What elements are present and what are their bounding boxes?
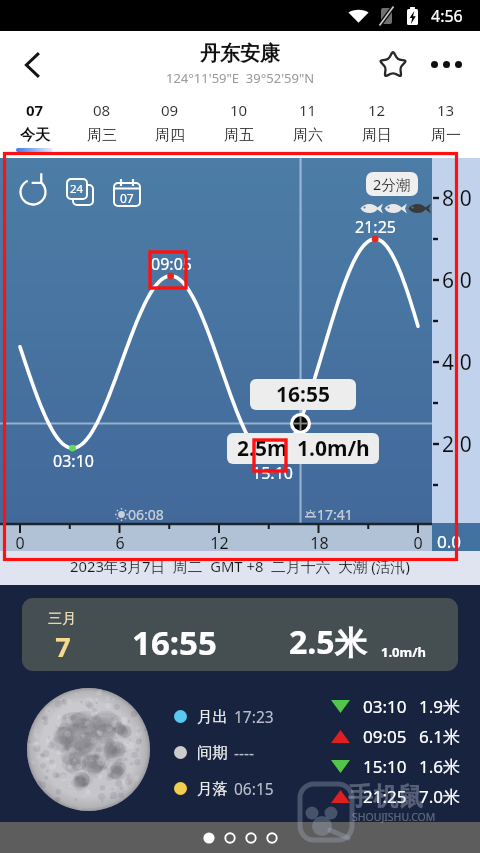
staticText: 6 xyxy=(115,532,125,554)
staticText: 2.0 xyxy=(442,430,472,459)
staticText: 2分潮 xyxy=(373,174,411,194)
button[interactable]: Back xyxy=(4,36,62,94)
button[interactable]: 10 xyxy=(204,95,273,153)
button[interactable]: Favorite xyxy=(371,42,415,86)
staticText: 08 xyxy=(93,100,111,120)
staticText: 6.1米 xyxy=(419,725,461,748)
button[interactable]: 03:10 xyxy=(331,695,461,718)
staticText: 周五 xyxy=(224,126,254,145)
staticText: 16:55 xyxy=(276,380,330,409)
staticText: 17:41 xyxy=(317,505,353,524)
staticText: 07 xyxy=(120,190,134,206)
staticText: 13 xyxy=(437,100,455,120)
staticText: 周六 xyxy=(293,126,323,145)
staticText: 间期 xyxy=(197,743,228,763)
staticText: 09:05 xyxy=(151,253,192,275)
staticText: 03:10 xyxy=(53,450,94,472)
staticText: 4:56 xyxy=(431,5,463,27)
staticText: 月落 xyxy=(197,779,228,799)
button[interactable]: 09:05 xyxy=(331,725,461,748)
staticText: 4.0 xyxy=(442,348,472,377)
staticText: 三月 xyxy=(48,610,76,628)
button[interactable]: 月出 xyxy=(174,706,274,727)
staticText: 周日 xyxy=(362,126,392,145)
staticText: 11 xyxy=(299,100,317,120)
staticText: 07 xyxy=(26,100,44,120)
staticText: 06:15 xyxy=(234,778,274,799)
button[interactable]: Page 3 xyxy=(245,832,257,844)
button[interactable]: 11 xyxy=(273,95,342,153)
button[interactable]: 21:25 xyxy=(331,785,461,808)
staticText: 2.5m xyxy=(237,434,288,463)
staticText: 1.6米 xyxy=(419,755,461,778)
button[interactable]: 2分潮 xyxy=(366,172,418,196)
staticText: 1.9米 xyxy=(419,695,461,718)
staticText: 0 xyxy=(413,532,423,554)
staticText: 手机鼠 xyxy=(348,781,423,812)
button[interactable]: 08 xyxy=(68,95,136,153)
button[interactable]: 2.5m xyxy=(227,433,379,464)
staticText: ---- xyxy=(234,742,254,763)
staticText: 09 xyxy=(161,100,179,120)
staticText: 周三 xyxy=(87,126,117,145)
button[interactable]: 12 xyxy=(342,95,411,153)
staticText: 24 xyxy=(70,181,84,197)
staticText: 8.0 xyxy=(442,184,472,213)
staticText: 1.0m/h xyxy=(381,643,427,661)
staticText: 2023年3月7日 周二 GMT +8 二月十六 大潮 (活汛) xyxy=(70,556,410,576)
button[interactable]: Page 1 xyxy=(203,832,215,844)
button[interactable]: 16:55 xyxy=(250,379,356,410)
staticText: 12 xyxy=(368,100,386,120)
staticText: 1.0m/h xyxy=(297,434,370,463)
button[interactable]: Refresh xyxy=(16,175,50,209)
staticText: 2.5米 xyxy=(289,620,367,664)
staticText: 17:23 xyxy=(234,706,274,727)
staticText: 0.0 xyxy=(437,530,462,553)
staticText: 今天 xyxy=(20,126,50,145)
button[interactable]: 09 xyxy=(136,95,204,153)
button[interactable]: Page 2 xyxy=(224,832,236,844)
staticText: 0 xyxy=(15,532,25,554)
staticText: 124°11'59"E 39°52'59"N xyxy=(166,69,315,87)
staticText: 15:10 xyxy=(252,462,293,484)
button[interactable]: 13 xyxy=(411,95,480,153)
staticText: 18 xyxy=(310,532,329,554)
button[interactable]: 间期 xyxy=(174,742,254,763)
staticText: 03:10 xyxy=(363,695,407,718)
staticText: 7.0米 xyxy=(419,785,461,808)
staticText: 21:25 xyxy=(355,216,396,238)
button[interactable]: Calendar xyxy=(112,175,144,207)
staticText: 16:55 xyxy=(132,620,217,665)
button[interactable]: 07 xyxy=(0,95,68,153)
staticText: 12 xyxy=(210,532,229,554)
button[interactable]: More options xyxy=(424,42,468,86)
staticText: 09:05 xyxy=(363,725,407,748)
button[interactable]: 月落 xyxy=(174,778,274,799)
button[interactable]: 三月 xyxy=(22,598,458,671)
staticText: 15:10 xyxy=(363,755,407,778)
staticText: 7 xyxy=(55,628,71,665)
staticText: 周四 xyxy=(155,126,185,145)
staticText: 6.0 xyxy=(442,266,472,295)
staticText: 月出 xyxy=(197,707,228,727)
staticText: 06:08 xyxy=(128,505,164,524)
button[interactable]: 15:10 xyxy=(331,755,461,778)
staticText: 周一 xyxy=(431,126,461,145)
staticText: 10 xyxy=(230,100,248,120)
button[interactable]: Page 4 xyxy=(266,832,278,844)
staticText: SHOUJISHU.COM xyxy=(352,810,436,824)
staticText: 21:25 xyxy=(363,785,407,808)
staticText: 丹东安康 xyxy=(200,41,280,66)
button[interactable]: 24 hour mode xyxy=(62,175,98,211)
